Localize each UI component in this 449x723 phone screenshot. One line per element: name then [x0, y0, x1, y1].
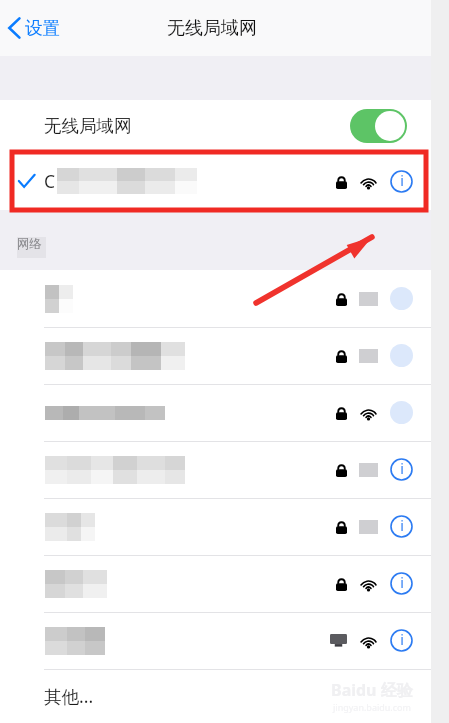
staticText: C — [44, 169, 56, 193]
button[interactable]: More info — [0, 555, 431, 612]
staticText: i — [400, 459, 404, 478]
staticText: i — [400, 630, 404, 649]
button[interactable]: More info — [0, 498, 431, 555]
staticText: i — [400, 573, 404, 592]
button[interactable]: More info — [390, 572, 413, 595]
button[interactable]: Wi-Fi on — [350, 109, 407, 143]
staticText: 网络 — [17, 236, 42, 252]
button[interactable]: 无线局域网 — [0, 100, 431, 152]
button[interactable]: 设置 — [8, 17, 60, 39]
staticText: 设置 — [25, 17, 60, 39]
button[interactable]: More info — [390, 515, 413, 538]
button[interactable]: More info — [0, 327, 431, 384]
button[interactable]: More info — [0, 270, 431, 327]
button[interactable]: More info — [390, 344, 413, 367]
button[interactable]: More info — [390, 629, 413, 652]
staticText: i — [400, 171, 404, 190]
staticText: jingyan.baidu.com — [333, 701, 411, 713]
staticText: 无线局域网 — [167, 17, 257, 40]
button[interactable]: More info — [390, 401, 413, 424]
button[interactable]: More info — [0, 441, 431, 498]
staticText: Baidu 经验 — [331, 679, 413, 701]
button[interactable]: C — [0, 152, 431, 210]
button[interactable]: More info — [390, 170, 413, 193]
button[interactable]: More info — [0, 612, 431, 669]
staticText: i — [400, 516, 404, 535]
button[interactable]: More info — [390, 458, 413, 481]
button[interactable]: More info — [0, 384, 431, 441]
button[interactable]: More info — [390, 287, 413, 310]
button[interactable]: 其他... — [0, 669, 431, 723]
staticText: 无线局域网 — [44, 115, 132, 137]
staticText: 其他... — [44, 684, 94, 708]
